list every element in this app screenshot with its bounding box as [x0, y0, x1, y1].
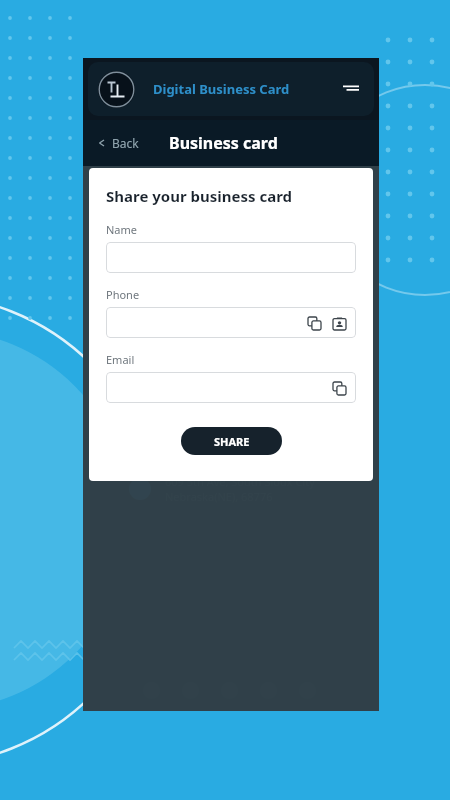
- staticText: 609 5th Ave, South Sioux City Nebraska(N…: [165, 474, 315, 504]
- staticText: Email: [106, 352, 135, 367]
- staticText: Back: [112, 135, 139, 151]
- staticText: consultant.ws@youngshop.com: [165, 390, 330, 405]
- button[interactable]: Back: [93, 129, 143, 157]
- button[interactable]: Contacts: [330, 314, 348, 332]
- staticText: Name: [106, 222, 138, 237]
- button[interactable]: Copy: [330, 379, 348, 397]
- button[interactable]: Menu: [338, 76, 364, 102]
- button[interactable]: Copy: [305, 314, 323, 332]
- button[interactable]: [106, 242, 356, 273]
- staticText: SHARE: [214, 434, 250, 449]
- button[interactable]: Copy: [106, 372, 356, 403]
- staticText: www.tonixtech.com: [165, 434, 267, 449]
- staticText: Digital Business Card: [153, 80, 290, 98]
- button[interactable]: SHARE: [181, 427, 282, 455]
- staticText: Share your business card: [106, 186, 293, 206]
- staticText: Phone: [106, 287, 140, 302]
- button[interactable]: Copy: [106, 307, 356, 338]
- staticText: Business card: [169, 132, 278, 154]
- button[interactable]: Logo: [98, 71, 135, 108]
